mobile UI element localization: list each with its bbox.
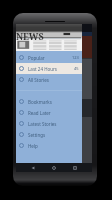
button[interactable]: Help	[16, 140, 82, 151]
button[interactable]: Back	[29, 164, 37, 172]
staticText: Settings	[28, 132, 46, 138]
button[interactable]: Home	[50, 164, 58, 172]
staticText: NEWS	[16, 30, 44, 42]
staticText: Bookmarks	[28, 99, 52, 105]
staticText: Help	[28, 143, 38, 149]
staticText: Latest Stories	[28, 121, 57, 127]
button[interactable]: Bookmarks	[16, 96, 82, 107]
staticText: All Stories	[28, 77, 49, 83]
button[interactable]: Latest Stories	[16, 118, 82, 129]
staticText: Read Later	[28, 110, 51, 116]
button[interactable]: Popular	[16, 52, 82, 63]
button[interactable]: All Stories	[16, 74, 82, 85]
staticText: 45	[74, 66, 79, 71]
staticText: 123	[72, 55, 79, 60]
button[interactable]: Read Later	[16, 107, 82, 118]
staticText: Last 24 Hours	[28, 66, 58, 72]
button[interactable]: Recents	[71, 164, 79, 172]
button[interactable]: Settings	[16, 129, 82, 140]
button[interactable]: Last 24 Hours	[16, 63, 82, 74]
staticText: Popular	[28, 55, 45, 61]
